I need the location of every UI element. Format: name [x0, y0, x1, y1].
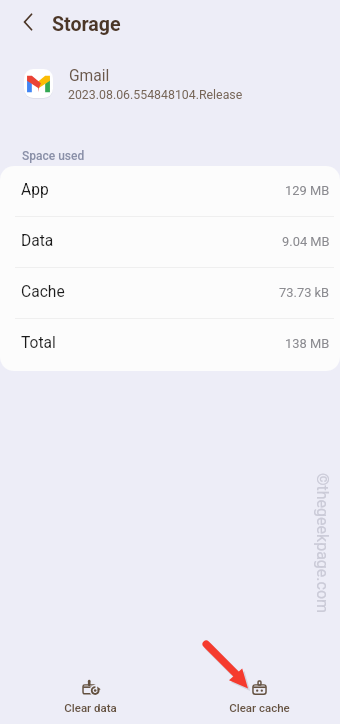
staticText: Total [21, 334, 56, 352]
button[interactable] [0, 62, 340, 104]
staticText: Clear data [64, 701, 117, 714]
button[interactable]: Total [0, 319, 340, 370]
staticText: 2023.08.06.554848104.Release [68, 88, 243, 102]
button[interactable]: App [0, 166, 340, 217]
staticText: Clear cache [229, 701, 290, 714]
staticText: Cache [21, 283, 65, 301]
button[interactable]: Clear data [50, 670, 130, 718]
staticText: 9.04 MB [282, 234, 330, 249]
button[interactable]: Data [0, 217, 340, 268]
staticText: Data [21, 232, 54, 250]
staticText: 73.73 kB [279, 285, 330, 300]
staticText: Gmail [69, 67, 110, 85]
staticText: 129 MB [285, 183, 330, 198]
staticText: Storage [52, 13, 121, 36]
button[interactable]: Cache [0, 268, 340, 319]
staticText: ©thegeekpage.com [313, 473, 332, 614]
staticText: Space used [22, 149, 85, 163]
button[interactable]: Clear cache [219, 670, 299, 718]
staticText: App [21, 181, 49, 199]
staticText: 138 MB [285, 336, 330, 351]
button[interactable]: Back [8, 2, 48, 42]
